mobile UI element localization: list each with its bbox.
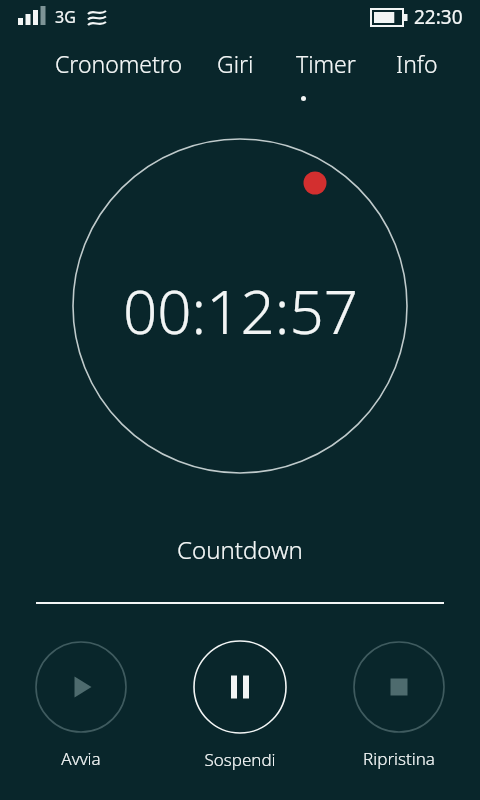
button[interactable]: Ripristina [339,641,459,770]
button[interactable]: Sospendi [179,640,301,771]
button[interactable]: Info [396,48,438,79]
staticText: Sospendi [204,748,276,771]
staticText: Timer [296,48,356,79]
staticText: 3G [55,6,76,28]
staticText: 22:30 [414,4,463,30]
button[interactable]: Timer [296,48,356,79]
button[interactable]: Avvia [21,641,141,770]
staticText: Countdown [177,533,303,566]
staticText: Avvia [61,747,101,770]
staticText: Cronometro [55,48,182,79]
button[interactable]: Giri [217,48,254,79]
staticText: Info [396,48,438,79]
staticText: Ripristina [363,747,435,770]
button[interactable]: Cronometro [55,48,182,79]
staticText: 00:12:57 [123,270,358,352]
staticText: Giri [217,48,254,79]
